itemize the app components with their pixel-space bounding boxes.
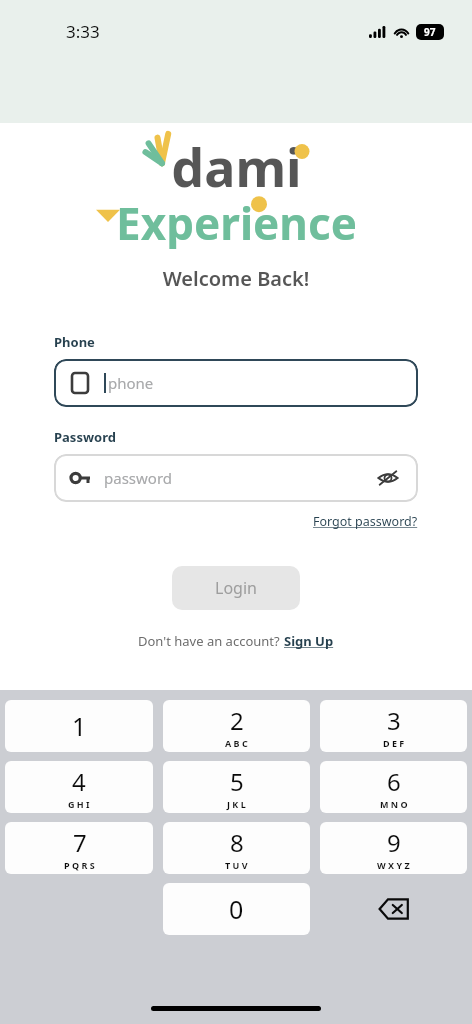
button[interactable]: 2 bbox=[163, 700, 310, 752]
staticText: 2 bbox=[230, 704, 244, 737]
staticText: 1 bbox=[72, 709, 87, 743]
button[interactable]: 4 bbox=[5, 761, 153, 813]
button[interactable]: 8 bbox=[163, 822, 310, 874]
staticText: 97 bbox=[424, 25, 436, 39]
staticText: 6 bbox=[387, 765, 401, 798]
staticText: P Q R S bbox=[64, 859, 95, 871]
button[interactable]: phone bbox=[54, 359, 418, 407]
staticText: Welcome Back! bbox=[0, 265, 472, 292]
staticText: Password bbox=[54, 428, 116, 446]
button[interactable]: 6 bbox=[320, 761, 467, 813]
staticText: 8 bbox=[230, 826, 244, 859]
staticText: Phone bbox=[54, 333, 95, 351]
staticText: 7 bbox=[73, 826, 87, 859]
staticText: 5 bbox=[230, 765, 244, 798]
button[interactable]: Show password bbox=[374, 464, 402, 492]
staticText: dami bbox=[171, 131, 302, 193]
staticText: 3 bbox=[387, 704, 401, 737]
staticText: D E F bbox=[383, 737, 405, 749]
button[interactable]: 9 bbox=[320, 822, 467, 874]
staticText: 0 bbox=[229, 892, 244, 926]
button[interactable]: 7 bbox=[5, 822, 153, 874]
staticText: Login bbox=[215, 577, 257, 599]
button[interactable]: Sign Up bbox=[284, 632, 334, 650]
staticText: 4 bbox=[72, 765, 86, 798]
staticText: 3:33 bbox=[66, 20, 100, 43]
button[interactable]: Backspace bbox=[315, 883, 472, 935]
button[interactable]: Login bbox=[172, 566, 300, 610]
button[interactable]: 5 bbox=[163, 761, 310, 813]
staticText: Don't have an account? bbox=[138, 632, 284, 650]
staticText: T U V bbox=[225, 859, 248, 871]
staticText: 9 bbox=[387, 826, 401, 859]
staticText: A B C bbox=[225, 737, 248, 749]
button[interactable]: 1 bbox=[5, 700, 153, 752]
staticText: M N O bbox=[380, 798, 408, 810]
staticText: phone bbox=[108, 373, 154, 393]
button[interactable]: 3 bbox=[320, 700, 467, 752]
button[interactable]: 0 bbox=[163, 883, 310, 935]
staticText: W X Y Z bbox=[377, 859, 410, 871]
staticText: Experience bbox=[116, 193, 357, 249]
button[interactable]: password bbox=[54, 454, 418, 502]
staticText: G H I bbox=[68, 798, 90, 810]
staticText: password bbox=[104, 468, 374, 488]
staticText: J K L bbox=[227, 798, 246, 810]
button[interactable]: Forgot password? bbox=[313, 513, 418, 530]
